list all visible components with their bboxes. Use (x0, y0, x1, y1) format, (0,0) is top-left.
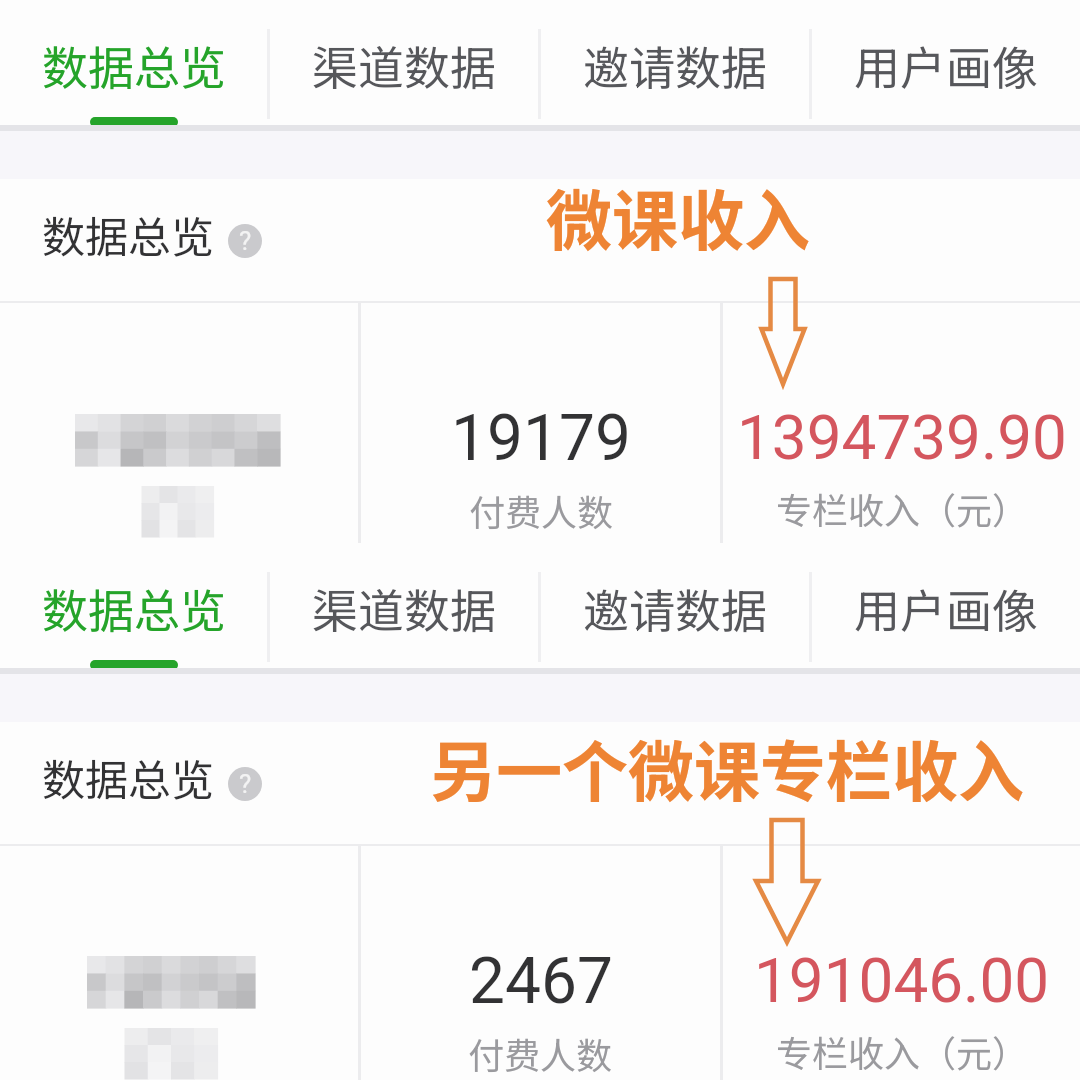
staticText: ? (239, 226, 252, 256)
button[interactable]: 1394739.90 (723, 303, 1080, 543)
staticText: 用户画像 (854, 575, 1038, 642)
staticText: 渠道数据 (312, 575, 496, 642)
button[interactable]: 说明 (228, 224, 262, 258)
staticText: 另一个微课专栏收入 (430, 719, 1024, 815)
staticText: 付费人数 (469, 484, 614, 536)
button[interactable]: 渠道数据 (270, 543, 538, 668)
button[interactable]: 渠道数据 (270, 0, 538, 125)
staticText: 1394739.90 (737, 401, 1067, 474)
button[interactable]: 数据总览 (0, 543, 267, 668)
staticText: 数据总览 (42, 203, 214, 265)
staticText: 微课收入 (546, 168, 810, 264)
staticText: 191046.00 (754, 944, 1050, 1017)
button[interactable]: 专栏名称 (0, 303, 358, 543)
button[interactable]: 邀请数据 (541, 543, 809, 668)
button[interactable]: 用户画像 (812, 0, 1080, 125)
staticText: 数据总览 (42, 32, 226, 99)
staticText: 数据总览 (42, 746, 214, 808)
staticText: ? (239, 769, 252, 799)
button[interactable]: 19179 (361, 303, 720, 543)
staticText: 邀请数据 (583, 575, 767, 642)
staticText: 渠道数据 (312, 32, 496, 99)
staticText: 专栏收入（元） (776, 482, 1029, 534)
button[interactable]: 说明 (228, 767, 262, 801)
staticText: 专栏收入（元） (776, 1025, 1029, 1077)
staticText: 数据总览 (42, 575, 226, 642)
button[interactable]: 专栏名称 (0, 846, 358, 1080)
staticText: 19179 (451, 401, 631, 476)
staticText: 用户画像 (854, 32, 1038, 99)
button[interactable]: 邀请数据 (541, 0, 809, 125)
button[interactable]: 用户画像 (812, 543, 1080, 668)
staticText: 付费人数 (468, 1027, 613, 1079)
button[interactable]: 数据总览 (0, 0, 267, 125)
staticText: 邀请数据 (583, 32, 767, 99)
staticText: 2467 (469, 944, 613, 1019)
button[interactable]: 2467 (361, 846, 720, 1080)
button[interactable]: 191046.00 (723, 846, 1080, 1080)
